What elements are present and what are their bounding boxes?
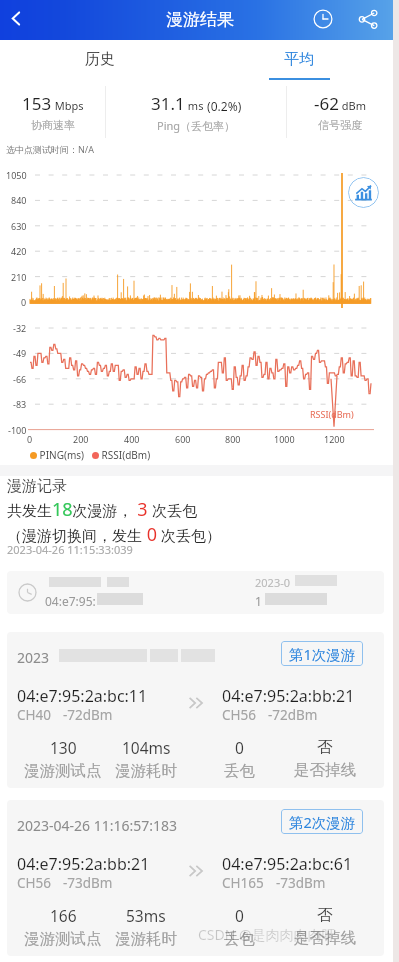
staticText: 153	[22, 92, 52, 115]
staticText: 漫游结果	[166, 9, 234, 30]
button[interactable]: 第2次漫游	[281, 809, 363, 834]
staticText: -72dBm	[63, 706, 113, 724]
staticText: 1000	[274, 433, 295, 445]
staticText: CH165	[222, 874, 264, 892]
staticText: 840	[11, 194, 27, 206]
staticText: 1050	[6, 169, 27, 181]
staticText: 漫游测试点	[24, 929, 102, 949]
staticText: 630	[11, 220, 27, 232]
staticText: -66	[13, 373, 27, 385]
staticText: 平均	[284, 50, 314, 69]
button[interactable]: 2023	[7, 632, 384, 788]
staticText: 166	[50, 905, 77, 926]
staticText: 420	[11, 245, 27, 257]
staticText: 共发生18次漫游， 3 次丢包	[7, 497, 198, 522]
button[interactable]: 平均	[199, 40, 399, 82]
staticText: 协商速率	[31, 118, 75, 132]
staticText: -49	[13, 347, 27, 359]
button[interactable]: 第1次漫游	[281, 641, 363, 666]
staticText: CH40	[17, 706, 51, 724]
button[interactable]: History	[305, 1, 340, 36]
staticText: -32	[13, 322, 27, 334]
staticText: 200	[73, 433, 89, 445]
staticText: 否	[317, 905, 333, 925]
staticText: 04:e7:95:	[45, 593, 96, 609]
staticText: 1200	[324, 433, 345, 445]
staticText: -83	[13, 398, 27, 410]
staticText: -72dBm	[268, 706, 318, 724]
staticText: 漫游记录	[7, 477, 67, 496]
staticText: 1	[255, 593, 262, 609]
staticText: 210	[11, 271, 27, 283]
button[interactable]: Back	[0, 0, 36, 38]
staticText: 2023-04-26 11:15:33:039	[7, 542, 133, 557]
staticText: 31.1	[151, 92, 185, 115]
staticText: 04:e7:95:2a:bb:21	[222, 685, 355, 707]
button[interactable]: 历史	[0, 40, 199, 82]
staticText: 漫游测试点	[24, 761, 102, 781]
staticText: Ping（丢包率）	[157, 118, 236, 133]
staticText: -100	[8, 424, 27, 436]
button[interactable]: Share	[350, 1, 385, 36]
staticText: 0	[21, 296, 27, 308]
staticText: RSSI(dBm)	[310, 408, 354, 420]
staticText: 否	[317, 737, 333, 757]
button[interactable]: Chart	[348, 177, 379, 208]
staticText: CH56	[17, 874, 51, 892]
staticText: 04:e7:95:2a:bb:21	[17, 853, 150, 875]
staticText: 选中点测试时间：N/A	[6, 143, 94, 155]
staticText: 丢包	[224, 929, 255, 949]
staticText: -73dBm	[63, 874, 113, 892]
staticText: 漫游耗时	[115, 929, 177, 949]
button[interactable]: 2023-04-26 11:16:57:183	[7, 800, 384, 956]
staticText: 历史	[85, 50, 115, 69]
staticText: 2023-0	[255, 575, 291, 590]
staticText: 04:e7:95:2a:bc:61	[222, 853, 353, 875]
staticText: RSSI(dBm)	[99, 448, 151, 462]
staticText: 104ms	[122, 737, 171, 758]
staticText: 800	[225, 433, 241, 445]
staticText: 丢包	[224, 761, 255, 781]
staticText: 是否掉线	[294, 760, 356, 780]
staticText: 600	[175, 433, 191, 445]
staticText: 0	[235, 737, 244, 758]
staticText: 0	[235, 905, 244, 926]
staticText: (0.2%)	[204, 98, 242, 114]
staticText: -73dBm	[276, 874, 326, 892]
staticText: -62	[314, 92, 339, 115]
staticText: 信号强度	[318, 118, 362, 132]
staticText: 是否掉线	[294, 928, 356, 948]
staticText: PING(ms)	[37, 448, 85, 462]
staticText: 400	[124, 433, 140, 445]
staticText: 2023-04-26 11:16:57:183	[17, 816, 178, 835]
staticText: CH56	[222, 706, 256, 724]
staticText: 04:e7:95:2a:bc:11	[17, 685, 148, 707]
staticText: CSDN @是肉肉肉肉呀	[198, 925, 336, 944]
staticText: dBm	[339, 98, 367, 113]
staticText: 第1次漫游	[289, 644, 356, 664]
staticText: 53ms	[126, 905, 166, 926]
staticText: Mbps	[52, 98, 84, 113]
staticText: 第2次漫游	[289, 812, 356, 832]
staticText: 130	[50, 737, 77, 758]
staticText: 漫游耗时	[115, 761, 177, 781]
staticText: ms	[185, 98, 204, 113]
button[interactable]: 04:e7:95:	[7, 571, 384, 614]
staticText: 0	[27, 433, 33, 445]
staticText: （漫游切换间，发生 0 次丢包）	[7, 522, 221, 547]
staticText: 2023	[17, 648, 50, 667]
